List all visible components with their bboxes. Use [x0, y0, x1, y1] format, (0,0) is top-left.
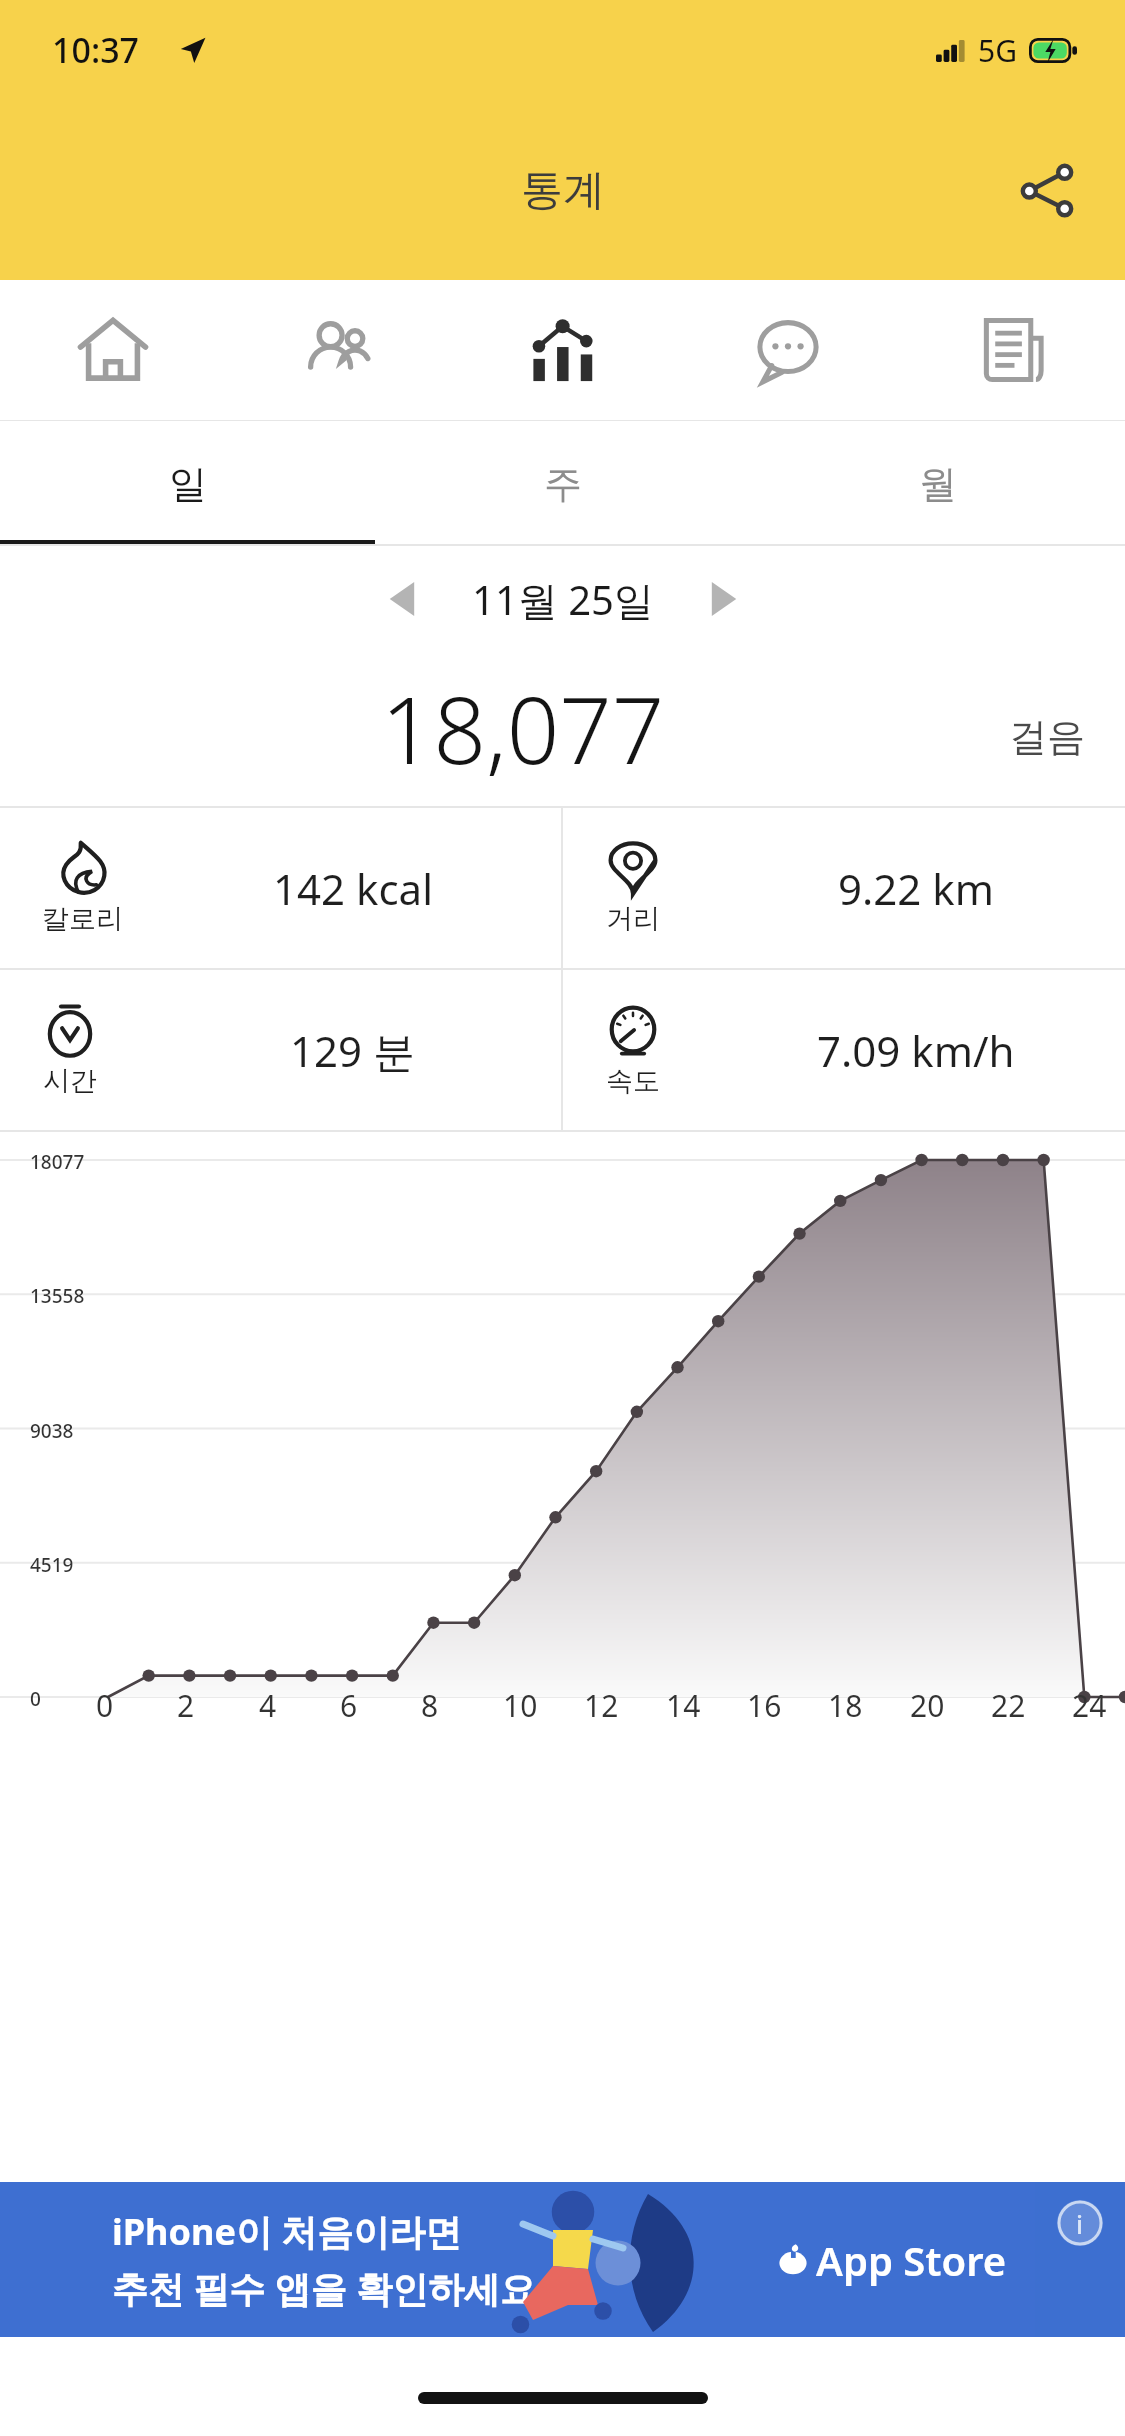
staticText: iPhone이 처음이라면 — [112, 2207, 462, 2256]
staticText: 6 — [340, 1685, 358, 1726]
staticText: 7.09 km/h — [817, 1022, 1015, 1079]
staticText: 16 — [747, 1685, 782, 1726]
staticText: 거리 — [606, 902, 660, 936]
staticText: 4 — [259, 1685, 277, 1726]
button[interactable]: 거리 — [563, 808, 1125, 968]
staticText: 18077 — [30, 1149, 85, 1175]
staticText: 24 — [1072, 1685, 1107, 1726]
button[interactable]: Next day — [682, 559, 762, 639]
staticText: 통계 — [521, 164, 605, 217]
button[interactable]: Previous day — [364, 559, 444, 639]
staticText: 주 — [544, 460, 582, 508]
staticText: 14 — [666, 1685, 701, 1726]
staticText: 걸음 — [1009, 713, 1085, 761]
staticText: 20 — [910, 1685, 945, 1726]
staticText: 10 — [503, 1685, 538, 1726]
button[interactable]: Statistics — [450, 280, 675, 420]
button[interactable]: 주 — [375, 421, 750, 546]
staticText: 9.22 km — [838, 860, 994, 917]
staticText: 4519 — [30, 1552, 74, 1578]
button[interactable]: Home — [0, 280, 225, 420]
staticText: 2 — [177, 1685, 195, 1726]
button[interactable]: 월 — [750, 421, 1125, 546]
button[interactable]: 시간 — [0, 970, 561, 1130]
button[interactable]: 칼로리 — [0, 808, 561, 968]
staticText: 0 — [30, 1686, 41, 1712]
staticText: 11월 25일 — [472, 572, 654, 627]
button[interactable]: Ad info — [1057, 2200, 1103, 2246]
button[interactable]: News — [900, 280, 1125, 420]
staticText: i — [1076, 2206, 1084, 2241]
staticText: 13558 — [30, 1283, 85, 1309]
staticText: 12 — [584, 1685, 619, 1726]
button[interactable]: 속도 — [563, 970, 1125, 1130]
button[interactable]: 일 — [0, 421, 375, 546]
staticText: 9038 — [30, 1418, 74, 1444]
staticText: 5G — [978, 30, 1017, 71]
button[interactable]: Chat — [675, 280, 900, 420]
staticText: 18 — [828, 1685, 863, 1726]
staticText: 22 — [991, 1685, 1026, 1726]
button[interactable]: Friends — [225, 280, 450, 420]
staticText: 0 — [96, 1685, 114, 1726]
button[interactable]: iPhone이 처음이라면 — [0, 2182, 1125, 2337]
staticText: 추천 필수 앱을 확인하세요 — [112, 2264, 537, 2313]
staticText: 칼로리 — [42, 902, 123, 936]
staticText: 월 — [919, 460, 957, 508]
staticText: 142 kcal — [273, 860, 433, 917]
staticText: 일 — [169, 460, 207, 508]
staticText: 8 — [421, 1685, 439, 1726]
staticText: 속도 — [606, 1064, 660, 1098]
staticText: 129 분 — [290, 1022, 415, 1079]
staticText: App Store — [816, 2233, 1007, 2287]
button[interactable]: Share — [999, 142, 1095, 238]
staticText: 18,077 — [381, 666, 665, 791]
staticText: 시간 — [43, 1064, 97, 1098]
staticText: 10:37 — [52, 27, 140, 73]
